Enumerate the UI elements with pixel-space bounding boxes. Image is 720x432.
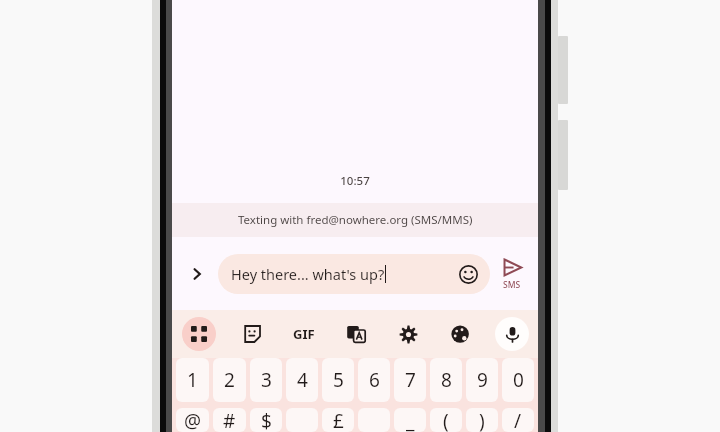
staticText: / bbox=[514, 408, 522, 432]
button[interactable]: 9 bbox=[466, 358, 498, 402]
button[interactable]: # bbox=[213, 408, 246, 432]
button[interactable]: 6 bbox=[358, 358, 390, 402]
staticText: $ bbox=[261, 408, 272, 432]
button[interactable]: Apps bbox=[172, 310, 225, 358]
button[interactable]: 2 bbox=[213, 358, 246, 402]
staticText: 3 bbox=[261, 367, 272, 393]
staticText: 2 bbox=[224, 367, 235, 393]
button[interactable]: Stickers bbox=[225, 310, 278, 358]
button[interactable]: 1 bbox=[176, 358, 209, 402]
staticText: ) bbox=[479, 408, 485, 432]
button[interactable]: ) bbox=[466, 408, 498, 432]
button[interactable]: / bbox=[502, 408, 534, 432]
staticText: Texting with fred@nowhere.org (SMS/MMS) bbox=[238, 212, 473, 228]
staticText: # bbox=[223, 408, 236, 432]
staticText: 5 bbox=[333, 367, 344, 393]
staticText: 9 bbox=[477, 367, 488, 393]
button[interactable]: 5 bbox=[322, 358, 354, 402]
button[interactable]: Send SMS bbox=[496, 257, 528, 291]
button[interactable]: Settings bbox=[382, 310, 434, 358]
staticText: GIF bbox=[293, 325, 315, 343]
button[interactable]: Emoji bbox=[455, 261, 481, 287]
staticText: 10:57 bbox=[340, 173, 370, 189]
button[interactable]: _ bbox=[394, 408, 426, 432]
staticText: 4 bbox=[297, 367, 308, 393]
staticText: 8 bbox=[441, 367, 452, 393]
button[interactable]: 7 bbox=[394, 358, 426, 402]
staticText: _ bbox=[406, 408, 415, 432]
button[interactable]: GIF bbox=[278, 310, 330, 358]
button[interactable]: $ bbox=[250, 408, 282, 432]
staticText: 0 bbox=[513, 367, 524, 393]
button[interactable]: ( bbox=[430, 408, 462, 432]
button[interactable]: 8 bbox=[430, 358, 462, 402]
button[interactable]: Themes bbox=[434, 310, 486, 358]
button[interactable]: 3 bbox=[250, 358, 282, 402]
button[interactable]: 0 bbox=[502, 358, 534, 402]
staticText: SMS bbox=[503, 279, 521, 291]
button[interactable]: £ bbox=[322, 408, 354, 432]
button[interactable]: Translate bbox=[330, 310, 382, 358]
button[interactable] bbox=[358, 408, 390, 432]
staticText: 6 bbox=[369, 367, 380, 393]
staticText: £ bbox=[333, 408, 344, 432]
staticText: 7 bbox=[405, 367, 416, 393]
staticText: 1 bbox=[187, 367, 198, 393]
staticText: Hey there... what's up? bbox=[231, 264, 385, 284]
button[interactable]: Expand bbox=[180, 257, 214, 291]
button[interactable]: @ bbox=[176, 408, 209, 432]
button[interactable] bbox=[286, 408, 318, 432]
button[interactable]: Hey there... what's up? bbox=[218, 254, 490, 294]
staticText: ( bbox=[443, 408, 449, 432]
staticText: @ bbox=[184, 408, 202, 432]
button[interactable]: 4 bbox=[286, 358, 318, 402]
button[interactable]: Voice input bbox=[486, 310, 538, 358]
